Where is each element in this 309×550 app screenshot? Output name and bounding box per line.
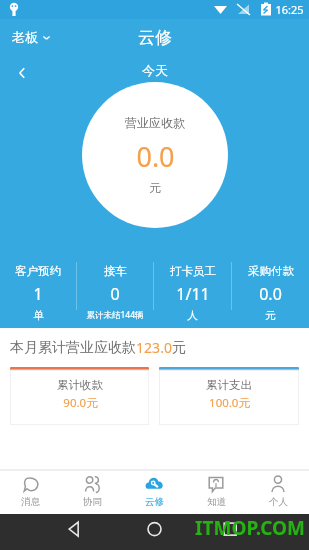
staticText: 今天 [142,62,168,78]
button[interactable]: 采购付款 [232,256,309,323]
staticText: 90.0元 [63,395,98,411]
button[interactable]: Back [8,59,36,87]
staticText: 0.0 [136,138,175,175]
staticText: 客户预约 [15,264,61,278]
staticText: 接车 [104,264,127,278]
button[interactable]: 打卡员工 [154,256,231,323]
button[interactable]: 知道 [185,470,247,514]
staticText: 元 [265,309,276,322]
staticText: 云修 [145,496,164,508]
staticText: 打卡员工 [170,264,216,278]
staticText: 123.0 [136,338,172,357]
staticText: ITMOP.COM [195,515,305,541]
staticText: 累计收款 [57,378,103,392]
staticText: 元 [149,180,161,195]
button[interactable]: 客户预约 [0,256,76,323]
staticText: 累计支出 [206,378,252,392]
button[interactable]: 云修 [123,470,185,514]
button[interactable]: 消息 [0,470,61,514]
button[interactable]: 个人 [247,470,309,514]
button[interactable]: 老板 [10,25,53,49]
staticText: 营业应收款 [125,115,185,130]
staticText: 知道 [207,496,226,508]
staticText: 协同 [83,496,102,508]
staticText: 100.0元 [209,395,250,411]
staticText: 累计未结144辆 [86,309,144,321]
staticText: 老板 [12,29,38,45]
staticText: 人 [187,309,198,322]
staticText: 个人 [269,496,288,508]
staticText: 1 [33,283,43,305]
staticText: 0 [110,283,120,305]
staticText: 1/11 [176,283,210,305]
button[interactable]: 接车 [77,256,153,323]
staticText: 本月累计营业应收款 [10,339,136,357]
staticText: 16:25 [275,2,304,17]
staticText: 元 [172,339,186,357]
button[interactable]: 营业应收款 [82,82,228,228]
staticText: 单 [33,309,44,322]
staticText: 云修 [138,27,172,48]
staticText: 0.0 [259,283,282,305]
button[interactable]: 累计收款 [10,367,149,425]
button[interactable]: 协同 [61,470,123,514]
button[interactable]: 累计支出 [159,367,299,425]
staticText: 消息 [21,496,40,508]
staticText: 采购付款 [248,264,294,278]
